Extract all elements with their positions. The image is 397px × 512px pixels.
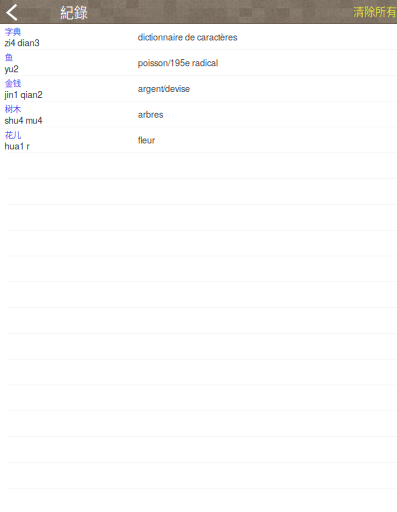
staticText: jin1 qian2 [4, 88, 42, 100]
staticText: 鱼 [5, 51, 13, 63]
button[interactable]: 鱼 [0, 50, 397, 76]
button[interactable]: 金钱 [0, 76, 397, 101]
staticText: poisson/195e radical [138, 56, 218, 69]
staticText: 树木 [5, 102, 21, 114]
staticText: argent/devise [138, 82, 190, 94]
staticText: 花儿 [5, 128, 21, 140]
button[interactable]: 树木 [0, 101, 397, 127]
staticText: zi4 dian3 [4, 36, 39, 49]
button[interactable]: 清除所有 [347, 0, 397, 23]
staticText: fleur [138, 133, 155, 146]
staticText: yu2 [4, 62, 18, 75]
staticText: 金钱 [5, 77, 21, 89]
button[interactable]: Back [0, 0, 28, 23]
staticText: 清除所有 [353, 3, 397, 19]
staticText: arbres [138, 108, 163, 120]
button[interactable]: 花儿 [0, 127, 397, 153]
staticText: 字典 [5, 25, 21, 37]
button[interactable]: 字典 [0, 24, 397, 50]
staticText: shu4 mu4 [4, 113, 42, 126]
staticText: hua1 r [4, 139, 29, 152]
staticText: dictionnaire de caractères [138, 30, 237, 43]
staticText: 紀錄 [60, 1, 88, 22]
